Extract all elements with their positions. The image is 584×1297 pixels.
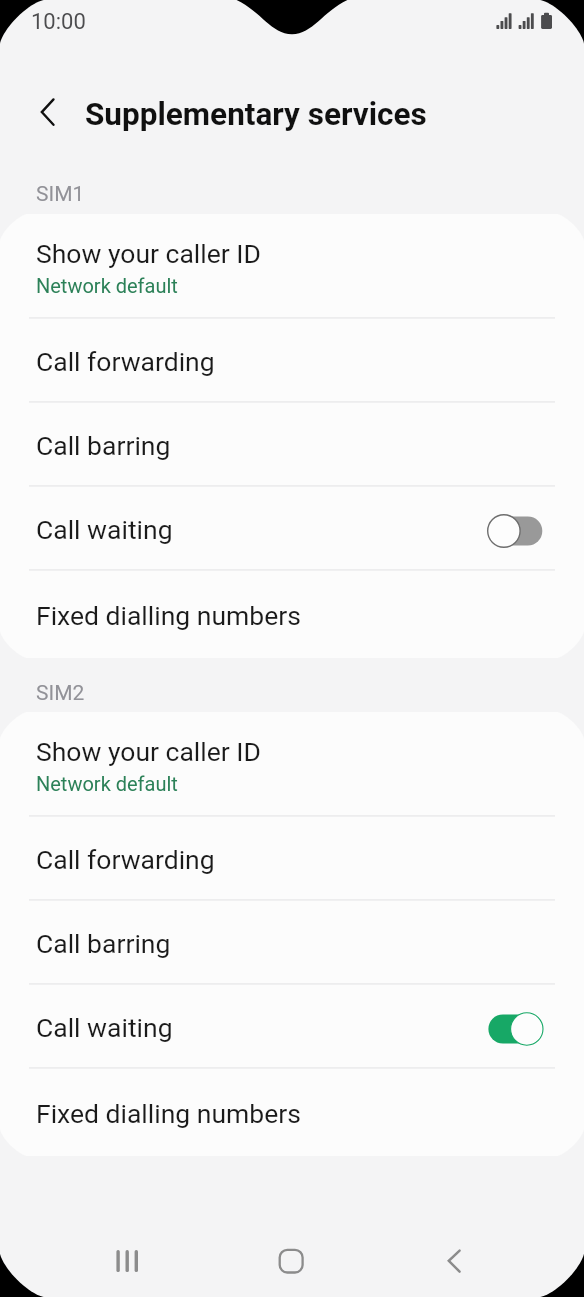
staticText: Call barring: [36, 928, 171, 959]
staticText: Supplementary services: [85, 96, 427, 133]
staticText: Network default: [36, 274, 178, 297]
staticText: 10:00: [31, 9, 86, 35]
staticText: Fixed dialling numbers: [36, 600, 301, 631]
staticText: Show your caller ID: [36, 238, 261, 269]
staticText: Call waiting: [36, 514, 173, 545]
button[interactable]: Call waiting: [0, 486, 584, 570]
button[interactable]: Home: [267, 1237, 315, 1285]
button[interactable]: Call forwarding: [0, 318, 584, 402]
button[interactable]: Navigate up: [26, 90, 73, 137]
button[interactable]: Call waiting toggle: [489, 511, 559, 551]
staticText: Network default: [36, 772, 178, 795]
button[interactable]: Back: [430, 1237, 478, 1285]
staticText: Show your caller ID: [36, 736, 261, 767]
button[interactable]: Call barring: [0, 402, 584, 486]
staticText: Call barring: [36, 430, 171, 461]
staticText: SIM2: [36, 681, 85, 706]
button[interactable]: Fixed dialling numbers: [0, 1068, 584, 1156]
staticText: Fixed dialling numbers: [36, 1098, 301, 1129]
staticText: SIM1: [36, 182, 85, 207]
button[interactable]: Recent apps: [103, 1237, 151, 1285]
button[interactable]: Show your caller ID: [0, 214, 584, 318]
button[interactable]: Call forwarding: [0, 816, 584, 900]
button[interactable]: Call waiting toggle: [489, 1009, 559, 1049]
button[interactable]: Show your caller ID: [0, 712, 584, 816]
button[interactable]: Fixed dialling numbers: [0, 570, 584, 658]
staticText: Call forwarding: [36, 346, 215, 377]
staticText: Call forwarding: [36, 844, 215, 875]
button[interactable]: Call barring: [0, 900, 584, 984]
staticText: Call waiting: [36, 1012, 173, 1043]
button[interactable]: Call waiting: [0, 984, 584, 1068]
